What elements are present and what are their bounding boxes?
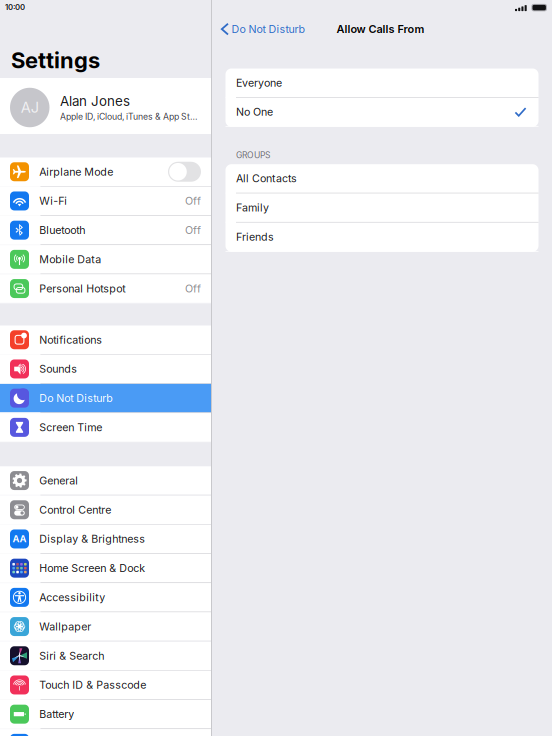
staticText: Touch ID & Passcode — [39, 678, 146, 691]
button[interactable]: Home Screen & Dock — [0, 554, 211, 583]
staticText: Off — [185, 282, 201, 295]
staticText: 10:00 — [5, 2, 25, 12]
staticText: Wi-Fi — [39, 194, 67, 207]
staticText: Notifications — [39, 333, 102, 346]
staticText: Display & Brightness — [39, 532, 145, 545]
button[interactable]: Control Centre — [0, 495, 211, 525]
button[interactable]: AA — [0, 525, 211, 554]
staticText: General — [39, 474, 78, 487]
button[interactable]: Siri & Search — [0, 641, 211, 671]
staticText: Battery — [39, 708, 74, 721]
staticText: All Contacts — [236, 172, 297, 185]
staticText: Off — [185, 224, 201, 237]
button[interactable]: All Contacts — [225, 164, 538, 193]
button[interactable]: Mobile Data — [0, 245, 211, 274]
button[interactable]: Notifications — [0, 325, 211, 355]
staticText: Alan Jones — [60, 93, 130, 109]
staticText: Personal Hotspot — [39, 282, 125, 295]
staticText: Settings — [11, 47, 100, 73]
staticText: Apple ID, iCloud, iTunes & App St… — [60, 111, 197, 122]
button[interactable]: Family — [225, 193, 538, 223]
button[interactable]: Wi-Fi — [0, 187, 211, 216]
button[interactable]: Wallpaper — [0, 612, 211, 641]
button[interactable]: Touch ID & Passcode — [0, 671, 211, 700]
button[interactable]: Do Not Disturb — [0, 384, 211, 413]
button[interactable]: No One — [225, 98, 538, 127]
staticText: AJ — [21, 99, 39, 116]
button[interactable]: Bluetooth — [0, 216, 211, 245]
button[interactable]: Personal Hotspot — [0, 274, 211, 303]
button[interactable]: Screen Time — [0, 413, 211, 442]
staticText: Screen Time — [39, 421, 102, 434]
staticText: Allow Calls From — [336, 22, 424, 36]
staticText: GROUPS — [236, 150, 270, 160]
staticText: Home Screen & Dock — [39, 562, 145, 575]
button[interactable]: Accessibility — [0, 583, 211, 612]
button[interactable]: Friends — [225, 223, 538, 252]
button[interactable]: Airplane Mode — [0, 157, 211, 187]
staticText: Airplane Mode — [39, 165, 113, 178]
button[interactable]: Everyone — [225, 68, 538, 98]
staticText: Control Centre — [39, 503, 111, 516]
button[interactable]: Privacy — [0, 729, 211, 736]
staticText: Family — [236, 201, 269, 214]
button[interactable]: General — [0, 466, 211, 495]
button[interactable]: Sounds — [0, 355, 211, 384]
staticText: Everyone — [236, 76, 282, 89]
staticText: Sounds — [39, 362, 77, 375]
staticText: Off — [185, 194, 201, 207]
staticText: No One — [236, 105, 273, 118]
button[interactable]: Do Not Disturb — [212, 15, 309, 42]
staticText: Bluetooth — [39, 224, 85, 237]
staticText: Wallpaper — [39, 620, 91, 633]
button[interactable]: AJ — [0, 78, 211, 134]
staticText: Siri & Search — [39, 649, 104, 662]
staticText: Accessibility — [39, 591, 105, 604]
staticText: Do Not Disturb — [39, 392, 113, 405]
staticText: Mobile Data — [39, 253, 101, 266]
staticText: AA — [12, 533, 26, 545]
staticText: Do Not Disturb — [231, 22, 305, 35]
button[interactable]: Battery — [0, 700, 211, 729]
staticText: Friends — [236, 230, 274, 243]
